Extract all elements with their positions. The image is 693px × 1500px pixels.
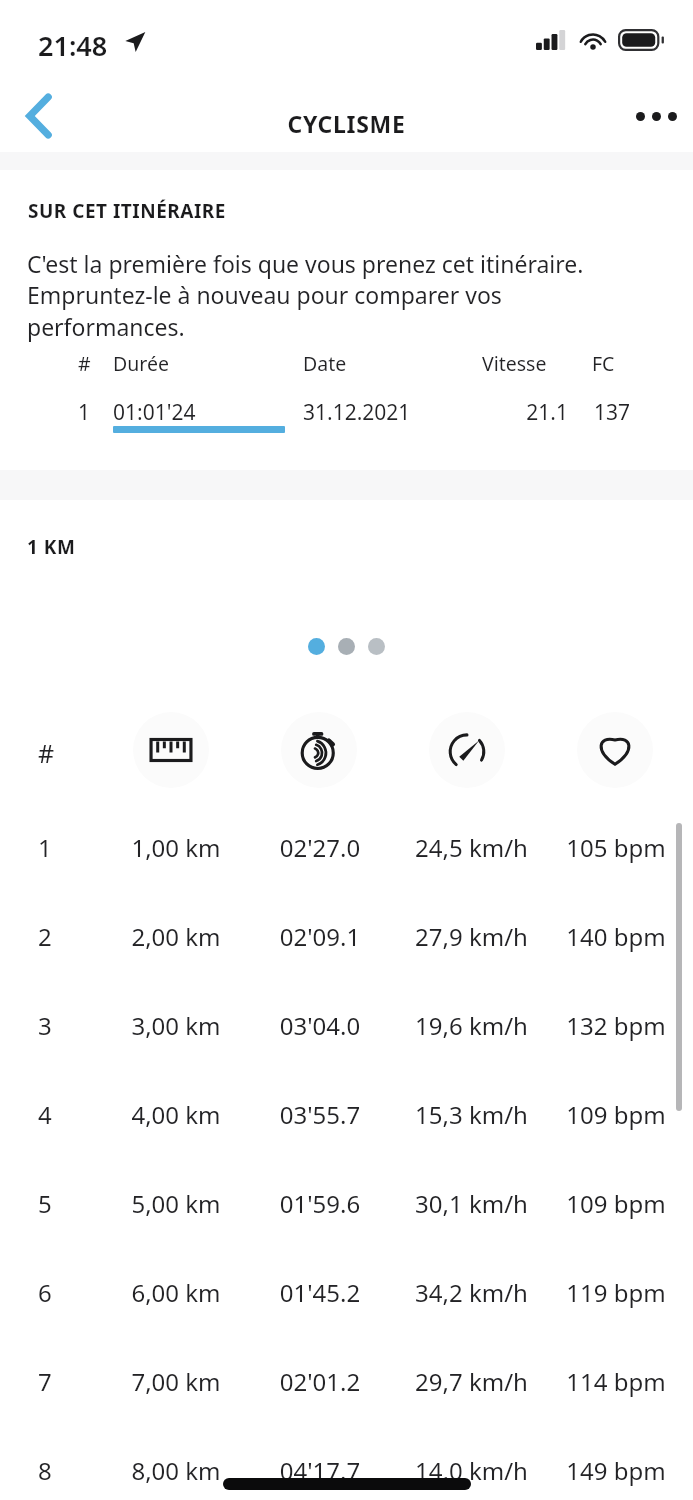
staticText: 03'55.7 [256,1098,384,1131]
staticText: 01:01'24 [113,398,263,427]
button[interactable]: Time [281,712,357,788]
staticText: 6,00 km [112,1276,240,1309]
button[interactable]: 3 [0,991,693,1059]
staticText: 119 bpm [551,1276,681,1309]
button[interactable]: 7 [0,1347,693,1415]
staticText: 5 [38,1187,72,1220]
staticText: # [38,736,68,770]
staticText: C'est la première fois que vous prenez c… [27,248,584,343]
staticText: # [78,350,102,377]
staticText: 4,00 km [112,1098,240,1131]
staticText: Vitesse [482,350,568,377]
staticText: FC [592,350,630,377]
staticText: 3 [38,1009,72,1042]
staticText: 140 bpm [551,920,681,953]
staticText: 137 [574,398,630,427]
staticText: 7 [38,1365,72,1398]
staticText: 109 bpm [551,1098,681,1131]
other: Heart rate [594,729,636,771]
staticText: 8 [38,1454,72,1487]
staticText: 105 bpm [551,831,681,864]
button[interactable]: Speed [429,712,505,788]
staticText: 02'27.0 [256,831,384,864]
staticText: 114 bpm [551,1365,681,1398]
staticText: 3,00 km [112,1009,240,1042]
staticText: CYCLISME [0,108,693,139]
button[interactable]: 4 [0,1080,693,1148]
staticText: 29,7 km/h [400,1365,543,1398]
staticText: 6 [38,1276,72,1309]
button[interactable]: Heart rate [577,712,653,788]
staticText: 21:48 [38,27,108,64]
staticText: 15,3 km/h [400,1098,543,1131]
staticText: 31.12.2021 [303,398,463,427]
button[interactable]: Back [2,80,76,152]
staticText: Durée [113,350,223,377]
staticText: 1 [38,831,72,864]
other: Speed [446,729,488,771]
button[interactable]: 5 [0,1169,693,1237]
button[interactable]: 8 [0,1436,693,1500]
staticText: 1 KM [27,534,76,560]
button[interactable]: 6 [0,1258,693,1326]
staticText: 30,1 km/h [400,1187,543,1220]
staticText: 21.1 [482,398,568,427]
staticText: 02'01.2 [256,1365,384,1398]
staticText: 01'45.2 [256,1276,384,1309]
staticText: 7,00 km [112,1365,240,1398]
staticText: SUR CET ITINÉRAIRE [28,198,226,224]
staticText: 132 bpm [551,1009,681,1042]
staticText: 149 bpm [551,1454,681,1487]
staticText: 34,2 km/h [400,1276,543,1309]
staticText: 8,00 km [112,1454,240,1487]
other: Time [298,729,340,771]
staticText: 1 [78,398,102,427]
staticText: 1,00 km [112,831,240,864]
staticText: 2 [38,920,72,953]
button[interactable]: Distance [133,712,209,788]
button[interactable]: More options [613,80,693,152]
staticText: 2,00 km [112,920,240,953]
button[interactable]: 2 [0,902,693,970]
staticText: 02'09.1 [256,920,384,953]
staticText: 4 [38,1098,72,1131]
staticText: 109 bpm [551,1187,681,1220]
staticText: 19,6 km/h [400,1009,543,1042]
staticText: 03'04.0 [256,1009,384,1042]
button[interactable]: 1 [0,813,693,881]
staticText: 01'59.6 [256,1187,384,1220]
staticText: 04'17.7 [256,1454,384,1487]
staticText: 14,0 km/h [400,1454,543,1487]
other: Distance [150,729,192,771]
staticText: 24,5 km/h [400,831,543,864]
staticText: 27,9 km/h [400,920,543,953]
staticText: 5,00 km [112,1187,240,1220]
staticText: Date [303,350,393,377]
